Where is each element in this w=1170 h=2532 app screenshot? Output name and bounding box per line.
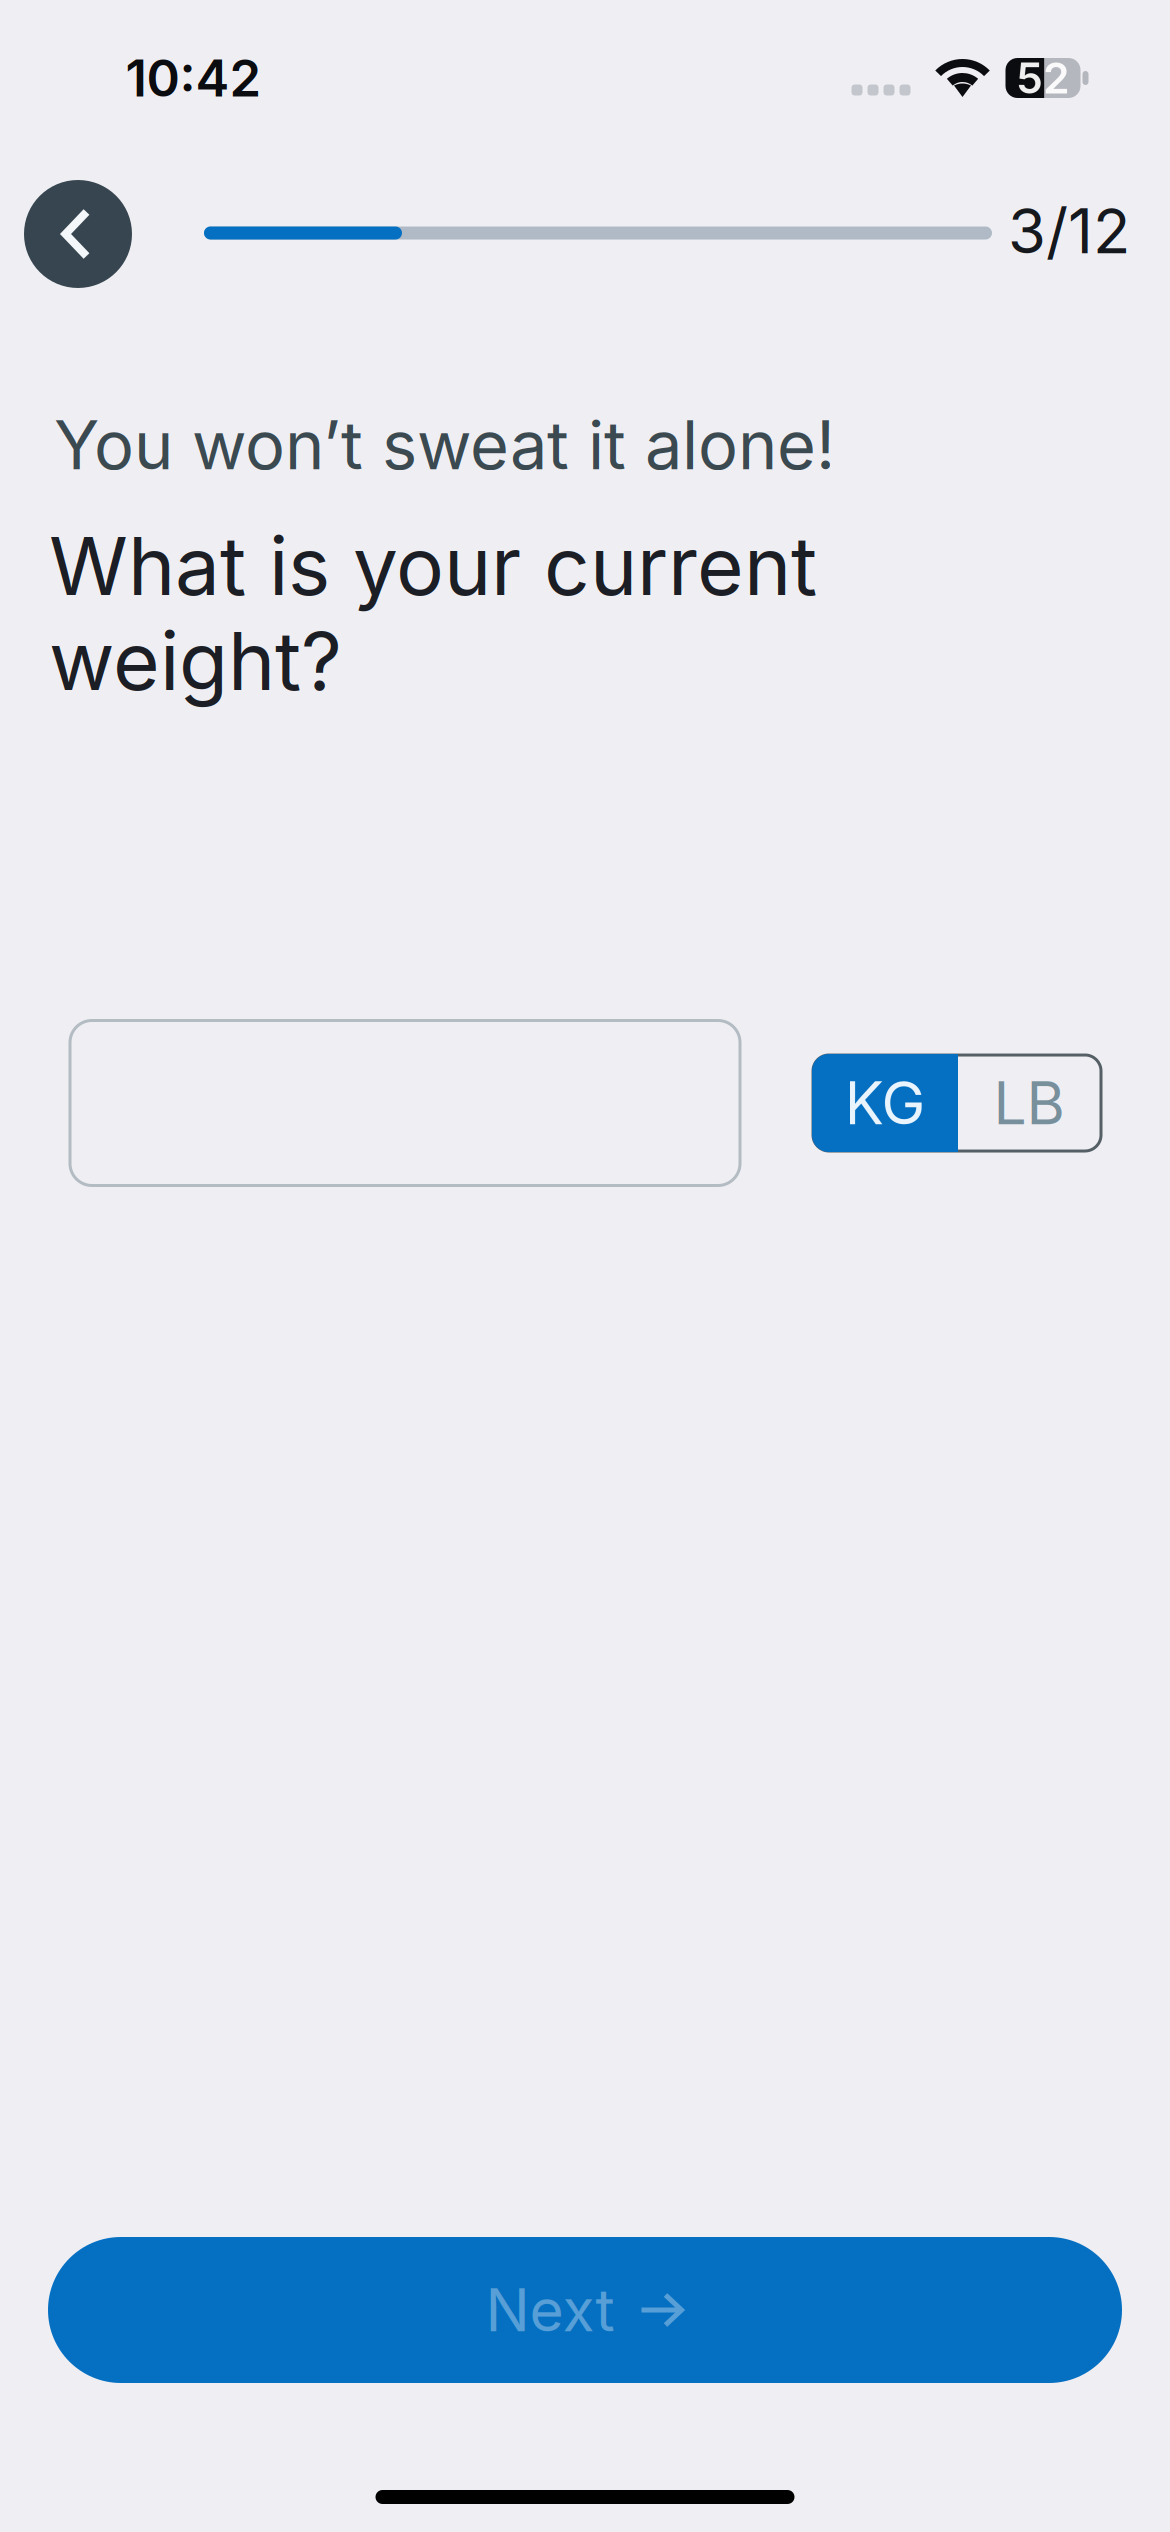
staticText: weight?: [49, 613, 342, 709]
staticText: KG: [844, 1067, 925, 1138]
staticText: Next: [485, 2274, 614, 2345]
staticText: LB: [993, 1067, 1064, 1138]
staticText: You won’t sweat it alone!: [54, 405, 835, 485]
staticText: 10:42: [125, 47, 261, 109]
staticText: 3/12: [1008, 194, 1130, 268]
button[interactable]: KG: [812, 1054, 958, 1152]
staticText: What is your current: [49, 518, 817, 614]
button[interactable]: Back: [24, 180, 132, 288]
button[interactable]: LB: [957, 1055, 1101, 1151]
staticText: 52: [1016, 52, 1070, 104]
button[interactable]: Next: [48, 2237, 1122, 2383]
